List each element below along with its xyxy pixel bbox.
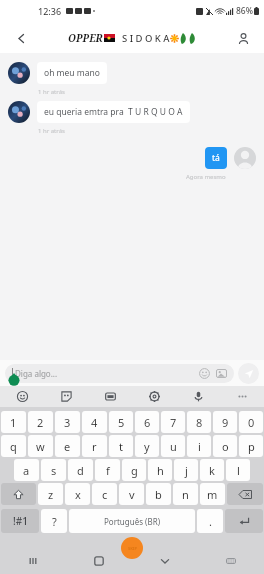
button[interactable]: Shift <box>1 483 36 505</box>
button[interactable]: z <box>38 483 63 505</box>
button[interactable]: 7 <box>161 411 185 433</box>
button[interactable]: t <box>109 435 133 457</box>
button[interactable]: m <box>200 483 225 505</box>
button[interactable]: Hide keyboard <box>132 548 198 574</box>
staticText: 2 <box>37 415 44 430</box>
button[interactable]: GIF <box>88 386 132 407</box>
button[interactable]: b <box>146 483 171 505</box>
staticText: 4 <box>91 415 98 430</box>
staticText: S I D O K A <box>122 32 170 45</box>
button[interactable]: Recents <box>0 548 66 574</box>
staticText: OPPER <box>68 31 103 45</box>
staticText: p <box>248 439 255 454</box>
staticText: q <box>10 439 17 454</box>
staticText: 7 <box>170 415 177 430</box>
button[interactable]: Enter <box>225 509 263 533</box>
staticText: Português (BR) <box>104 516 161 527</box>
staticText: x <box>75 487 81 502</box>
button[interactable]: f <box>95 459 120 481</box>
staticText: z <box>48 487 54 502</box>
staticText: r <box>92 439 97 454</box>
button[interactable]: Switch keyboard <box>198 548 264 574</box>
button[interactable]: 3 <box>55 411 80 433</box>
button[interactable]: y <box>135 435 159 457</box>
staticText: a <box>23 463 30 478</box>
staticText: b <box>155 487 162 502</box>
button[interactable]: Voice input <box>176 386 220 407</box>
staticText: SKIP <box>128 546 137 551</box>
button[interactable]: 5 <box>109 411 133 433</box>
button[interactable]: Profile <box>231 26 255 50</box>
button[interactable]: u <box>161 435 185 457</box>
button[interactable]: More options <box>220 386 264 407</box>
staticText: oh meu mano <box>44 67 100 79</box>
button[interactable]: eu queria emtra pra T U R Q U O A <box>37 101 190 123</box>
button[interactable]: !#1 <box>1 509 39 533</box>
button[interactable]: o <box>213 435 237 457</box>
button[interactable]: 4 <box>82 411 107 433</box>
staticText: Agora mesmo <box>186 173 226 181</box>
button[interactable]: s <box>41 459 66 481</box>
button[interactable]: l <box>226 459 250 481</box>
button[interactable]: Send <box>238 363 259 384</box>
button[interactable]: w <box>28 435 53 457</box>
button[interactable]: 6 <box>135 411 159 433</box>
button[interactable]: Back <box>9 26 33 50</box>
button[interactable]: Diga algo... <box>5 364 234 383</box>
button[interactable]: e <box>55 435 80 457</box>
button[interactable]: Stickers <box>44 386 88 407</box>
button[interactable]: Português (BR) <box>69 509 195 533</box>
button[interactable]: Gallery <box>216 368 227 379</box>
button[interactable]: r <box>82 435 107 457</box>
staticText: n <box>182 487 189 502</box>
button[interactable]: j <box>174 459 198 481</box>
button[interactable]: Settings <box>132 386 176 407</box>
staticText: y <box>144 439 150 454</box>
button[interactable]: n <box>173 483 198 505</box>
staticText: t <box>119 439 123 454</box>
staticText: u <box>170 439 177 454</box>
button[interactable]: h <box>148 459 172 481</box>
staticText: e <box>64 439 71 454</box>
staticText: f <box>106 463 110 478</box>
button[interactable]: Emoji <box>199 368 210 379</box>
button[interactable]: . <box>197 509 223 533</box>
staticText: o <box>222 439 229 454</box>
button[interactable]: 8 <box>187 411 211 433</box>
button[interactable]: g <box>122 459 146 481</box>
button[interactable]: 1 <box>1 411 26 433</box>
staticText: 8 <box>196 415 203 430</box>
button[interactable]: 9 <box>213 411 237 433</box>
button[interactable]: 0 <box>239 411 263 433</box>
button[interactable]: d <box>68 459 93 481</box>
staticText: k <box>209 463 215 478</box>
staticText: m <box>207 487 218 502</box>
button[interactable]: q <box>1 435 26 457</box>
button[interactable]: k <box>200 459 224 481</box>
staticText: 5 <box>118 415 125 430</box>
staticText: 1 hr atrás <box>38 127 65 135</box>
staticText: eu queria emtra pra T U R Q U O A <box>44 106 183 118</box>
staticText: v <box>129 487 135 502</box>
button[interactable]: v <box>119 483 144 505</box>
button[interactable]: c <box>92 483 117 505</box>
staticText: w <box>36 439 45 454</box>
button[interactable]: oh meu mano <box>37 62 107 84</box>
button[interactable]: ? <box>41 509 67 533</box>
button[interactable]: a <box>14 459 39 481</box>
staticText: 0 <box>248 415 255 430</box>
button[interactable]: Backspace <box>227 483 263 505</box>
button[interactable]: x <box>65 483 90 505</box>
staticText: i <box>198 439 201 454</box>
staticText: ? <box>52 514 57 529</box>
staticText: g <box>131 463 138 478</box>
button[interactable]: 2 <box>28 411 53 433</box>
button[interactable]: Emoji <box>0 386 44 407</box>
staticText: !#1 <box>13 514 28 528</box>
button[interactable]: Quick action <box>121 537 143 559</box>
button[interactable]: Home <box>66 548 132 574</box>
button[interactable]: tá <box>205 147 227 169</box>
button[interactable]: i <box>187 435 211 457</box>
staticText: 9 <box>222 415 229 430</box>
button[interactable]: p <box>239 435 263 457</box>
